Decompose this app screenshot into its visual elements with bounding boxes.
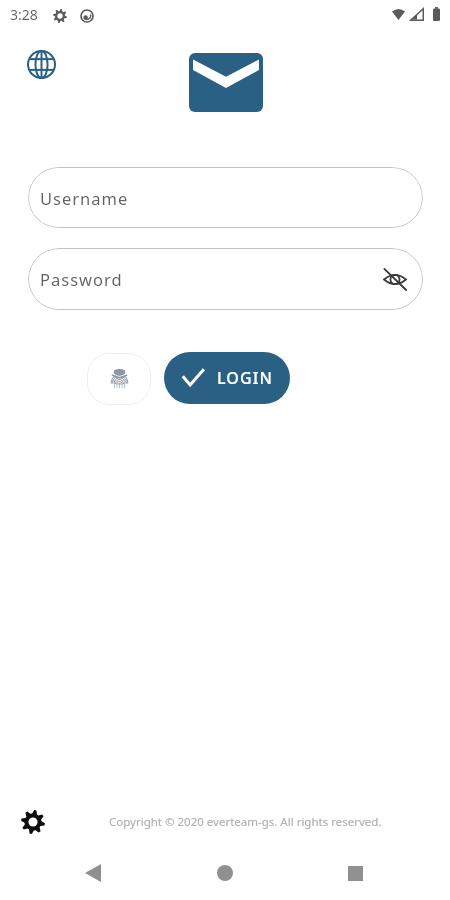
staticText: Password (40, 268, 123, 290)
button[interactable]: Home (201, 849, 249, 897)
button[interactable]: Language (21, 44, 61, 84)
button[interactable]: Settings (21, 810, 45, 834)
button[interactable]: LOGIN (164, 352, 290, 404)
staticText: Username (40, 187, 129, 209)
button[interactable]: Username (28, 167, 423, 228)
staticText: Copyright © 2020 everteam-gs. All rights… (109, 814, 382, 830)
button[interactable]: Recents (331, 849, 379, 897)
staticText: LOGIN (217, 367, 273, 389)
button[interactable]: Fingerprint login (87, 353, 151, 405)
button[interactable]: Toggle password visibility (380, 264, 410, 294)
button[interactable]: Password (28, 248, 423, 310)
staticText: 3:28 (10, 5, 38, 24)
button[interactable]: Back (69, 849, 117, 897)
